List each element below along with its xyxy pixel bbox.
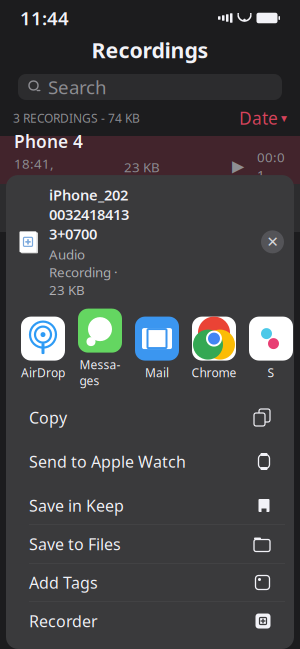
- staticText: Save in Keep: [29, 495, 124, 516]
- staticText: Audio Recording · 23 KB: [49, 245, 118, 299]
- button[interactable]: Recorder: [15, 602, 285, 640]
- button[interactable]: Save in Keep: [15, 486, 285, 524]
- button[interactable]: Save to Files: [15, 525, 285, 563]
- button[interactable]: Date: [239, 106, 287, 129]
- staticText: ▶: [232, 157, 244, 175]
- staticText: Phone 2: [14, 178, 83, 201]
- button[interactable]: Add Tags: [15, 563, 285, 601]
- button[interactable]: AirDrop: [20, 317, 66, 380]
- staticText: 00:01: [257, 148, 285, 184]
- staticText: Recordings: [91, 36, 208, 64]
- staticText: AirDrop: [21, 365, 65, 380]
- staticText: iPhone_20200324184133+0700: [49, 185, 129, 243]
- staticText: Chrome: [191, 365, 236, 380]
- staticText: 27 KB: [124, 206, 160, 224]
- staticText: S: [267, 365, 274, 380]
- staticText: 18:41, 03/24/20: [14, 155, 72, 190]
- button[interactable]: S: [248, 317, 294, 380]
- staticText: Phone 4: [14, 130, 83, 153]
- staticText: Send to Apple Watch: [29, 451, 186, 472]
- staticText: 3 RECORDINGS - 74 KB: [13, 110, 140, 126]
- button[interactable]: Phone 2: [0, 184, 300, 232]
- staticText: Mail: [145, 365, 169, 380]
- staticText: ▾: [281, 111, 287, 125]
- staticText: Add Tags: [29, 572, 98, 593]
- button[interactable]: Copy: [15, 398, 285, 436]
- button[interactable]: Close: [261, 230, 284, 253]
- staticText: Messages: [79, 357, 120, 388]
- staticText: Recorder: [29, 610, 98, 632]
- staticText: Save to Files: [29, 533, 121, 555]
- button[interactable]: Send to Apple Watch: [15, 442, 285, 480]
- staticText: 11:44: [20, 6, 69, 30]
- button[interactable]: Chrome: [191, 317, 237, 380]
- button[interactable]: Messages: [77, 309, 123, 388]
- button[interactable]: Mail: [134, 317, 180, 380]
- staticText: Date: [239, 106, 278, 129]
- button[interactable]: Phone 4: [0, 136, 300, 184]
- staticText: 18:39, 03/24/20: [14, 203, 72, 238]
- button[interactable]: Search: [18, 74, 282, 100]
- staticText: 23 KB: [124, 158, 160, 176]
- staticText: Search: [48, 75, 107, 99]
- staticText: Copy: [29, 407, 67, 428]
- staticText: ✕: [266, 233, 278, 250]
